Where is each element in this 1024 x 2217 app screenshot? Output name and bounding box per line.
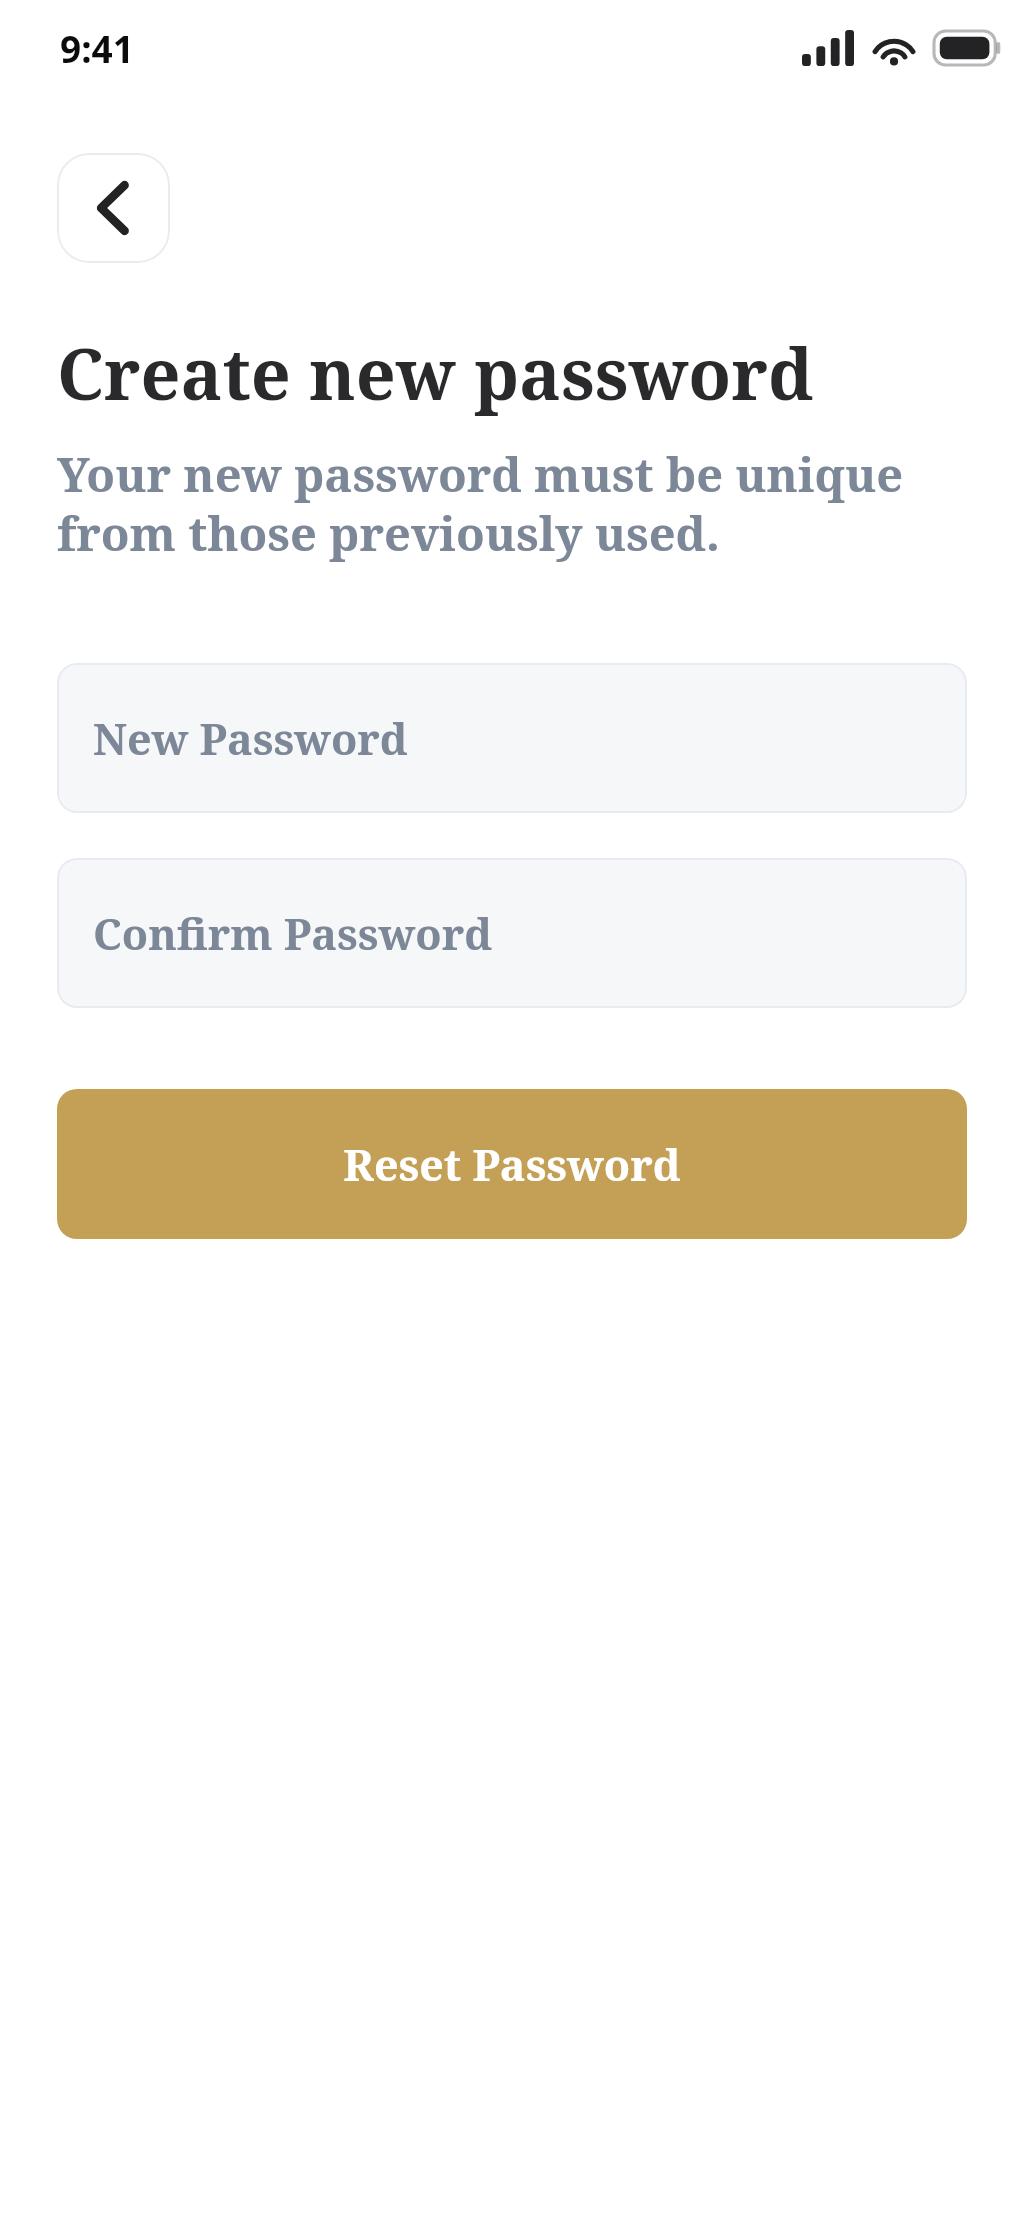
staticText: Create new password — [57, 325, 814, 420]
button[interactable]: Confirm Password — [57, 858, 967, 1008]
button[interactable]: Reset Password — [57, 1089, 967, 1239]
staticText: New Password — [93, 709, 408, 768]
staticText: Reset Password — [343, 1135, 681, 1194]
staticText: 9:41 — [60, 23, 134, 73]
staticText: Confirm Password — [93, 904, 493, 963]
button[interactable]: New Password — [57, 663, 967, 813]
button[interactable]: Back — [57, 153, 170, 263]
staticText: Your new password must be unique from th… — [57, 442, 988, 565]
